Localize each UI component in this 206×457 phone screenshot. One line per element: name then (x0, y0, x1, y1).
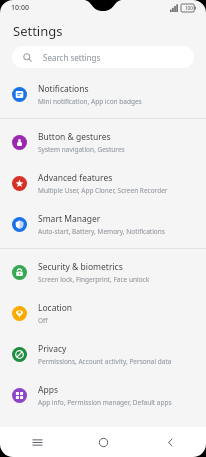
button[interactable]: Privacy (0, 334, 206, 375)
staticText: System navigation, Gestures (38, 145, 125, 154)
button[interactable]: Notifications (0, 74, 206, 115)
button[interactable]: Apps (0, 375, 206, 416)
staticText: Settings (13, 22, 63, 40)
button[interactable]: Button & gestures (0, 122, 206, 163)
button[interactable]: Smart Manager (0, 204, 206, 245)
button[interactable]: Location (0, 293, 206, 334)
staticText: Multiple User, App Cloner, Screen Record… (38, 186, 168, 195)
staticText: Off (38, 316, 48, 325)
staticText: 10:00 (11, 3, 29, 13)
staticText: Mini notification, App icon badges (38, 97, 142, 106)
staticText: App info, Permission manager, Default ap… (38, 398, 172, 407)
staticText: Notifications (38, 83, 89, 95)
button[interactable]: Recent apps (7, 427, 67, 457)
staticText: Advanced features (38, 172, 113, 184)
staticText: Smart Manager (38, 213, 101, 225)
staticText: Button & gestures (38, 131, 111, 143)
button[interactable]: Security & biometrics (0, 252, 206, 293)
staticText: Permissions, Account activity, Personal … (38, 357, 172, 366)
staticText: Auto-start, Battery, Memory, Notificatio… (38, 227, 165, 236)
staticText: Privacy (38, 343, 67, 355)
staticText: Screen lock, Fingerprint, Face unlock (38, 275, 150, 284)
staticText: Search settings (43, 52, 101, 63)
button[interactable]: Search settings (12, 46, 194, 68)
button[interactable]: Advanced features (0, 163, 206, 204)
staticText: Apps (38, 384, 58, 396)
button[interactable]: Back (140, 427, 200, 457)
staticText: 100 (185, 5, 193, 11)
staticText: Security & biometrics (38, 261, 123, 273)
staticText: Location (38, 302, 73, 314)
button[interactable]: Home (73, 427, 133, 457)
